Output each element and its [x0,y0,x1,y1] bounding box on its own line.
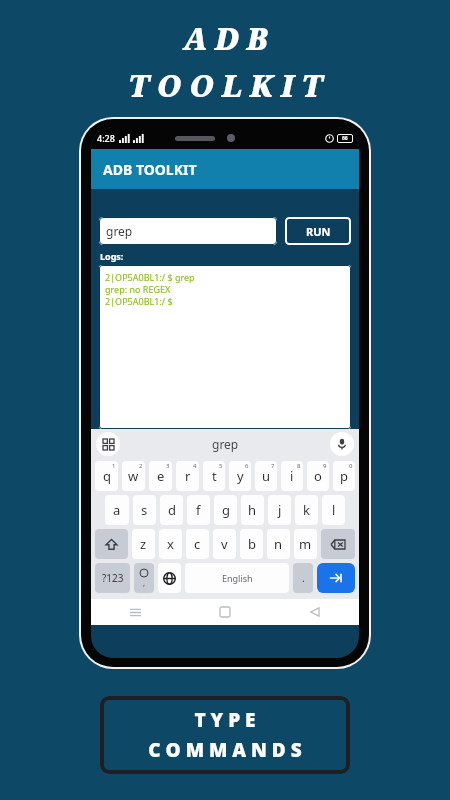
button[interactable]: y [229,461,251,491]
staticText: grep [106,223,133,239]
staticText: 3 [166,462,170,470]
button[interactable]: j [268,495,291,525]
staticText: , [143,577,146,588]
staticText: o [314,467,322,485]
staticText: g [222,501,230,519]
button[interactable]: . [293,563,313,593]
staticText: ADB TOOLKIT [103,160,197,179]
button[interactable]: r [176,461,199,491]
staticText: 4 [193,462,197,470]
button[interactable]: w [122,461,145,491]
staticText: grep: no REGEX [105,283,171,295]
staticText: A D B [183,18,268,59]
staticText: 9 [323,462,327,470]
button[interactable]: Home [215,602,235,622]
button[interactable]: x [159,529,182,559]
staticText: ?123 [102,571,124,585]
staticText: 66 [342,135,348,142]
button[interactable]: Emoji [134,563,154,593]
staticText: w [128,467,139,485]
staticText: z [140,535,147,553]
staticText: d [168,501,176,519]
staticText: grep [212,436,239,452]
button[interactable]: t [203,461,225,491]
button[interactable]: English [185,563,289,593]
button[interactable]: h [241,495,264,525]
button[interactable]: s [133,495,156,525]
staticText: T O O L K I T [128,65,322,106]
staticText: e [157,467,165,485]
button[interactable]: Key [321,529,355,559]
staticText: u [262,467,271,485]
staticText: v [221,535,228,553]
button[interactable]: f [187,495,210,525]
button[interactable]: v [213,529,236,559]
button[interactable]: u [255,461,277,491]
button[interactable]: ?123 [95,563,130,593]
button[interactable]: m [294,529,317,559]
button[interactable]: l [322,495,345,525]
button[interactable]: o [307,461,329,491]
staticText: t [212,467,217,485]
button[interactable]: Language [158,563,181,593]
button[interactable]: Clipboard [96,432,120,456]
staticText: 2|OP5A0BL1:/ $ grep [105,271,195,283]
staticText: 0 [349,462,353,470]
button[interactable]: Back [305,602,325,622]
staticText: f [196,501,201,519]
button[interactable]: RUN [285,217,351,245]
staticText: 6 [245,462,249,470]
button[interactable]: grep [99,217,277,245]
button[interactable]: c [186,529,209,559]
staticText: b [248,535,256,553]
button[interactable]: z [132,529,155,559]
button[interactable]: b [240,529,263,559]
staticText: h [248,501,257,519]
staticText: Logs: [100,250,124,262]
staticText: C O M M A N D S [148,737,302,763]
button[interactable]: a [105,495,129,525]
staticText: n [274,535,283,553]
staticText: 2|OP5A0BL1:/ $ [105,295,173,307]
staticText: x [167,535,174,553]
staticText: j [278,501,282,519]
button[interactable]: e [149,461,172,491]
staticText: p [340,467,348,485]
button[interactable]: Recents [125,602,145,622]
staticText: 2 [139,462,143,470]
staticText: s [141,501,148,519]
button[interactable]: 2|OP5A0BL1:/ $ grep [99,265,351,429]
staticText: y [237,467,244,485]
staticText: k [303,501,310,519]
staticText: 7 [271,462,275,470]
staticText: T Y P E [194,707,256,733]
staticText: English [222,572,253,584]
staticText: q [103,467,111,485]
button[interactable]: d [160,495,183,525]
staticText: i [290,467,294,485]
button[interactable]: k [295,495,318,525]
staticText: a [113,501,121,519]
button[interactable]: n [267,529,290,559]
button[interactable]: g [214,495,237,525]
staticText: . [302,571,305,585]
button[interactable]: T Y P E [100,696,350,774]
button[interactable]: q [95,461,118,491]
staticText: RUN [306,224,331,239]
button[interactable]: Voice input [330,432,354,456]
staticText: 8 [297,462,301,470]
staticText: 1 [112,462,116,470]
staticText: l [332,501,336,519]
button[interactable]: Enter [317,563,355,593]
staticText: r [185,467,191,485]
button[interactable]: p [333,461,355,491]
staticText: 5 [219,462,223,470]
staticText: c [194,535,201,553]
button[interactable]: Key [95,529,128,559]
button[interactable]: i [281,461,303,491]
staticText: m [299,535,312,553]
staticText: 4:28 [97,132,115,144]
